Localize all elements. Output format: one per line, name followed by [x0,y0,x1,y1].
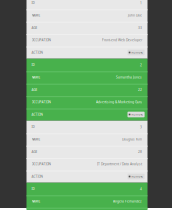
staticText: ACTION [31,112,42,117]
staticText: 4 [140,187,142,191]
staticText: NAME [31,75,40,79]
staticText: 28 [138,149,142,154]
staticText: 3 [140,125,142,129]
staticText: Remove [131,51,143,54]
staticText: OCCUPATION [31,162,50,166]
staticText: Samantha Jones [116,75,142,79]
staticText: Remove [131,175,143,178]
staticText: NAME [31,137,40,141]
staticText: John Doe [128,13,142,17]
staticText: Remove [131,113,143,116]
staticText: NAME [31,13,40,17]
staticText: OCCUPATION [31,38,50,42]
staticText: AGE [31,88,37,92]
staticText: 22 [138,87,142,92]
staticText: ACTION [31,50,42,55]
button[interactable]: Remove [127,112,145,117]
staticText: 33 [138,25,142,30]
staticText: ID [31,63,34,67]
staticText: Advertising & Marketing Guru [96,100,142,104]
staticText: ID [31,1,34,5]
staticText: ACTION [31,174,42,179]
staticText: AGE [31,150,37,154]
staticText: ID [31,187,34,191]
staticText: 2 [140,63,142,67]
staticText: NAME [31,199,40,203]
button[interactable]: Remove [127,174,145,179]
staticText: OCCUPATION [31,100,50,104]
staticText: Douglas Kim [122,137,142,141]
button[interactable]: Remove [127,50,145,55]
staticText: AGE [31,26,37,30]
staticText: ID [31,125,34,129]
staticText: 1 [140,1,142,5]
staticText: IT Department / Data Analyst [97,162,142,166]
staticText: Angela Fernandez [113,199,142,203]
staticText: Front-end Web Developer [102,38,142,42]
